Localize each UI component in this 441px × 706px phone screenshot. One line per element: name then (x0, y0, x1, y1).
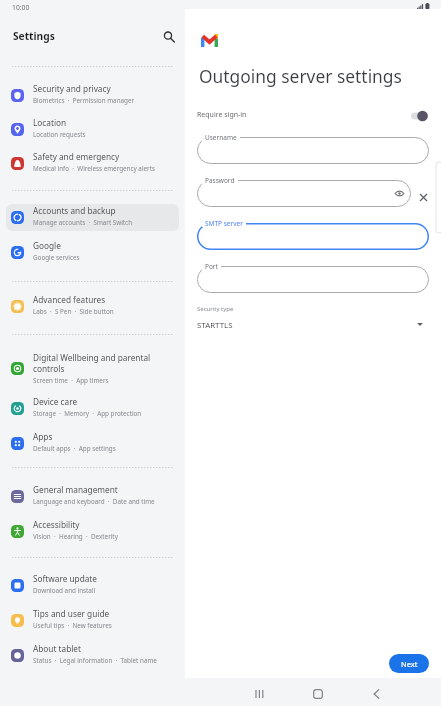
staticText: controls (33, 363, 65, 374)
staticText: Tips and user guide (33, 608, 110, 619)
staticText: Location requests (33, 130, 86, 139)
button[interactable]: Advanced features (6, 293, 179, 320)
staticText: Accessibility (33, 519, 80, 530)
staticText: Security and privacy (33, 83, 111, 94)
staticText: Default apps · App settings (33, 444, 116, 453)
button[interactable]: Settings (9, 24, 129, 48)
staticText: Digital Wellbeing and parental (33, 352, 151, 363)
staticText: Download and install (33, 586, 96, 595)
button[interactable]: Show password (393, 187, 406, 200)
button[interactable]: Select security type (414, 318, 426, 330)
staticText: Google services (33, 253, 80, 262)
button[interactable]: Google (6, 239, 179, 266)
button[interactable]: Clear (417, 191, 430, 204)
staticText: General management (33, 484, 118, 495)
staticText: Google (33, 240, 61, 251)
staticText: Software update (33, 573, 97, 584)
button[interactable]: Home (304, 680, 332, 706)
button[interactable]: Search (158, 26, 178, 46)
staticText: Location (33, 117, 67, 128)
staticText: STARTTLS (197, 320, 233, 331)
staticText: Vision · Hearing · Dexterity (33, 532, 118, 541)
button[interactable]: Require sign-in (409, 109, 431, 123)
button[interactable]: Port (197, 266, 429, 293)
staticText: Username (205, 133, 237, 141)
button[interactable]: Back (362, 680, 390, 706)
staticText: Medical info · Wireless emergency alerts (33, 164, 155, 173)
staticText: Device care (33, 396, 78, 407)
staticText: Storage · Memory · App protection (33, 409, 142, 418)
staticText: Apps (33, 431, 53, 442)
staticText: Safety and emergency (33, 151, 120, 162)
staticText: Biometrics · Permission manager (33, 96, 135, 105)
button[interactable]: Software update (6, 572, 179, 599)
staticText: Accounts and backup (33, 205, 116, 216)
staticText: Next (401, 659, 418, 669)
button[interactable]: Tips and user guide (6, 607, 179, 634)
staticText: Port (205, 262, 218, 270)
staticText: Labs · S Pen · Side button (33, 307, 114, 316)
staticText: 10:00 (12, 3, 30, 12)
staticText: Language and keyboard · Date and time (33, 497, 155, 506)
staticText: Screen time · App timers (33, 376, 109, 385)
button[interactable]: SMTP server (197, 223, 429, 250)
staticText: Outgoing server settings (199, 64, 402, 88)
staticText: Settings (13, 29, 55, 43)
button[interactable]: Recent apps (245, 680, 273, 706)
button[interactable]: Accounts and backup (6, 204, 179, 231)
staticText: Manage accounts · Smart Switch (33, 218, 133, 227)
staticText: SMTP server (205, 219, 243, 227)
staticText: Password (205, 176, 235, 184)
staticText: Status · Legal information · Tablet name (33, 656, 157, 665)
button[interactable]: Next (389, 654, 429, 673)
staticText: Require sign-in (197, 110, 247, 120)
staticText: Useful tips · New features (33, 621, 112, 630)
button[interactable]: About tablet (6, 642, 179, 669)
button[interactable]: Digital Wellbeing and parental (6, 351, 179, 385)
button[interactable]: General management (6, 483, 179, 510)
button[interactable]: Username (197, 137, 429, 164)
button[interactable]: Password (197, 180, 411, 207)
button[interactable]: Location (6, 116, 179, 143)
staticText: Security type (197, 305, 234, 313)
staticText: Advanced features (33, 294, 106, 305)
button[interactable]: Safety and emergency (6, 150, 179, 177)
staticText: About tablet (33, 643, 81, 654)
button[interactable]: Security and privacy (6, 82, 179, 109)
button[interactable]: Device care (6, 395, 179, 422)
button[interactable]: Apps (6, 430, 179, 457)
button[interactable]: Accessibility (6, 518, 179, 545)
